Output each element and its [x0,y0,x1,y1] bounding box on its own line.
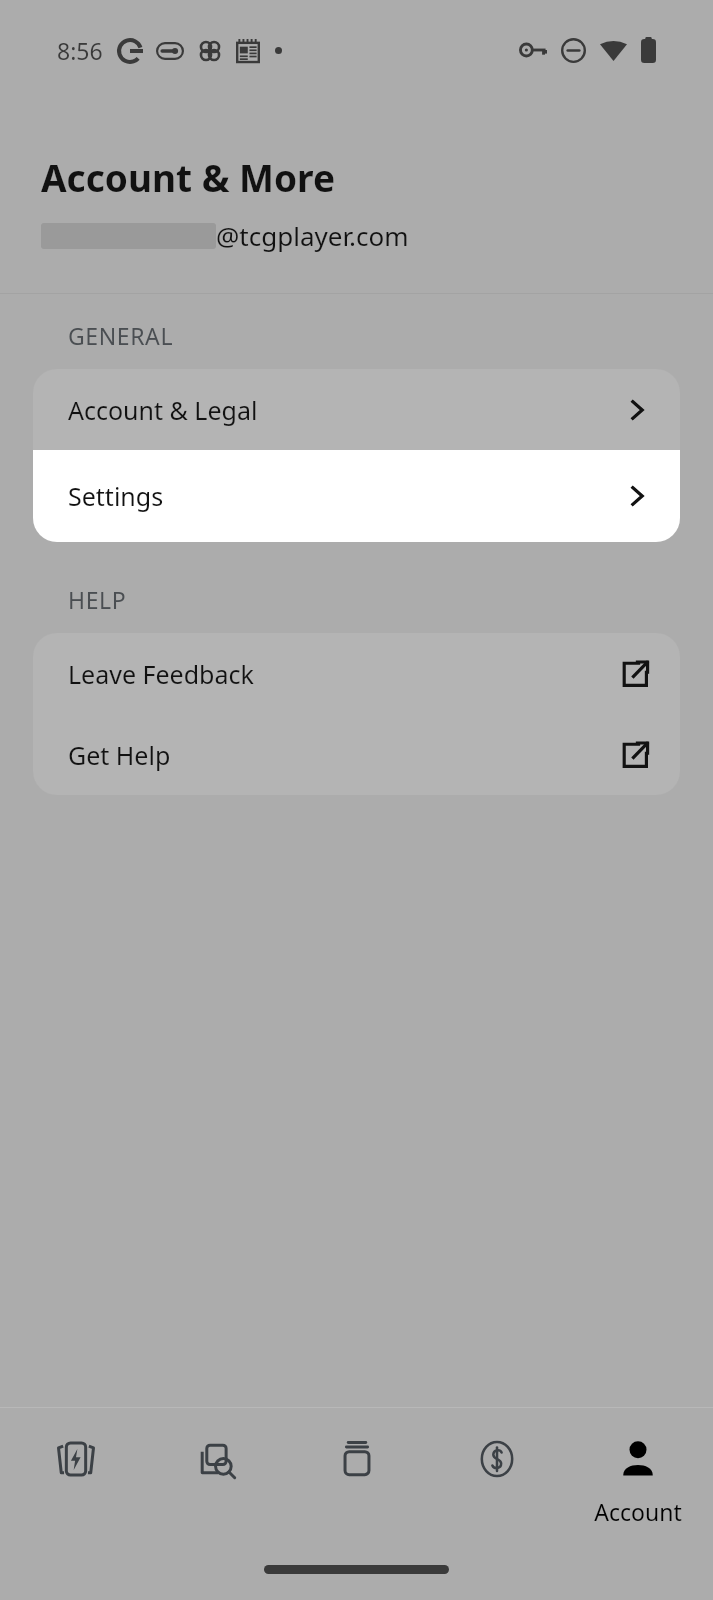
staticText: Account [594,1496,682,1527]
staticText: Settings [68,479,164,513]
button[interactable]: Account & Legal [33,369,680,450]
staticText: Get Help [68,738,171,772]
staticText: Account & More [41,152,335,202]
button[interactable]: Settings [33,450,680,542]
button[interactable]: Leave Feedback [33,633,680,714]
staticText: Leave Feedback [68,657,254,691]
staticText: @tcgplayer.com [216,218,409,253]
staticText: HELP [68,584,127,615]
button[interactable]: Search [151,1430,281,1488]
button[interactable]: Sell [432,1430,562,1488]
staticText: Account & Legal [68,393,258,427]
button[interactable]: Get Help [33,714,680,795]
staticText: GENERAL [68,320,174,351]
button[interactable]: Collection [292,1430,422,1488]
button[interactable]: Cards [11,1430,141,1488]
staticText: 8:56 [57,35,103,66]
button[interactable]: Account [573,1430,703,1533]
